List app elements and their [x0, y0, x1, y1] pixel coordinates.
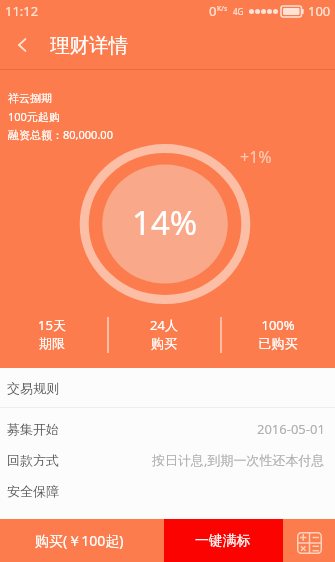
staticText: 购买(￥100起)	[35, 531, 124, 550]
staticText: 祥云捌期	[8, 91, 52, 109]
button[interactable]: 回款方式	[0, 444, 335, 475]
staticText: 交易规则	[7, 380, 59, 396]
staticText: 100元起购	[8, 109, 60, 127]
staticText: 期限	[0, 335, 108, 354]
staticText: 一键满标	[195, 532, 251, 549]
staticText: 2016-05-01	[257, 420, 325, 438]
staticText: 理财详情	[50, 33, 128, 58]
staticText: 24人	[108, 316, 220, 335]
button[interactable]: 一键满标	[164, 519, 283, 562]
button[interactable]: Back	[3, 23, 40, 67]
staticText: 11:12	[5, 2, 39, 20]
staticText: 15天	[0, 316, 108, 335]
staticText: 100	[308, 2, 331, 20]
staticText: 4G	[233, 6, 244, 17]
staticText: 购买	[108, 335, 220, 354]
button[interactable]: Calculator	[283, 519, 335, 562]
staticText: 回款方式	[7, 452, 59, 468]
staticText: 募集开始	[7, 421, 59, 437]
staticText: 安全保障	[7, 483, 59, 499]
staticText: 按日计息,到期一次性还本付息	[152, 451, 325, 469]
staticText: +1%	[240, 146, 272, 168]
button[interactable]: 购买(￥100起)	[0, 519, 164, 562]
staticText: 0	[209, 2, 217, 20]
staticText: 已购买	[222, 335, 334, 354]
staticText: 融资总额：80,000.00	[8, 127, 113, 145]
staticText: 100%	[222, 316, 334, 335]
button[interactable]: 安全保障	[0, 475, 335, 506]
staticText: K/s	[217, 4, 228, 14]
staticText: 14%	[132, 200, 198, 245]
button[interactable]: 募集开始	[0, 413, 335, 444]
button[interactable]: 交易规则	[0, 368, 335, 407]
